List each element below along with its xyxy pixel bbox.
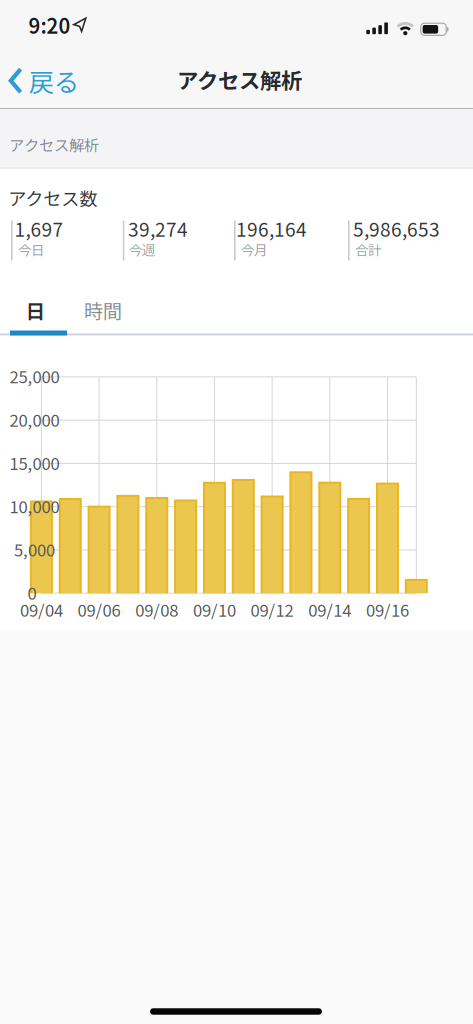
staticText: 5,986,653 xyxy=(353,215,440,242)
staticText: 1,697 xyxy=(14,215,63,242)
staticText: 合計 xyxy=(355,240,381,259)
staticText: アクセス数 xyxy=(8,184,97,211)
staticText: 09/14 xyxy=(308,597,351,621)
staticText: 196,164 xyxy=(236,215,307,242)
button[interactable]: 日 xyxy=(26,296,45,324)
staticText: 時間 xyxy=(84,296,122,324)
staticText: 今週 xyxy=(129,240,155,259)
staticText: 09/16 xyxy=(366,597,409,621)
staticText: 09/10 xyxy=(193,597,236,621)
button[interactable]: 時間 xyxy=(84,296,122,324)
staticText: 25,000 xyxy=(9,364,59,388)
staticText: 9:20 xyxy=(28,10,70,39)
staticText: 今日 xyxy=(18,240,44,259)
staticText: 戻る xyxy=(29,62,79,99)
staticText: 09/08 xyxy=(135,597,178,621)
staticText: 10,000 xyxy=(9,494,59,518)
staticText: 09/04 xyxy=(20,597,63,621)
staticText: 09/06 xyxy=(78,597,121,621)
staticText: 今月 xyxy=(241,240,267,259)
staticText: 5,000 xyxy=(14,537,55,561)
staticText: 日 xyxy=(26,296,45,324)
staticText: アクセス解析 xyxy=(177,64,302,95)
button[interactable]: 戻る xyxy=(8,62,79,99)
staticText: アクセス解析 xyxy=(9,133,99,156)
staticText: 20,000 xyxy=(9,407,59,431)
staticText: 09/12 xyxy=(251,597,294,621)
staticText: 15,000 xyxy=(9,451,59,475)
staticText: 0 xyxy=(27,580,36,604)
staticText: 39,274 xyxy=(128,215,188,242)
